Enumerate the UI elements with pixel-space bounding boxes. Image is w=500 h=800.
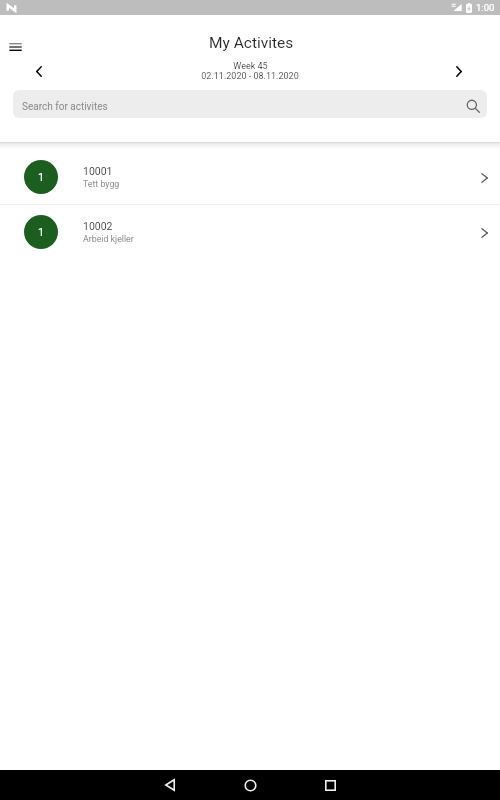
staticText: Tett bygg (83, 179, 120, 189)
staticText: My Activites (209, 34, 294, 52)
staticText: Arbeid kjeller (83, 234, 134, 244)
staticText: 1 (38, 226, 45, 239)
button[interactable]: Home (228, 770, 272, 800)
staticText: Search for activites (22, 101, 108, 113)
staticText: 10002 (83, 220, 113, 232)
button[interactable]: Recents (308, 770, 352, 800)
staticText: 1 (38, 171, 45, 184)
button[interactable]: Previous week (27, 60, 50, 83)
staticText: Week 45 (233, 61, 268, 72)
button[interactable]: Back (148, 770, 192, 800)
button[interactable]: Menu (3, 35, 27, 59)
button[interactable]: 1 (0, 205, 500, 259)
staticText: 1:00 (476, 2, 495, 13)
button[interactable]: 1 (0, 150, 500, 204)
button[interactable]: Next week (447, 60, 470, 83)
staticText: 02.11.2020 - 08.11.2020 (201, 71, 299, 82)
staticText: 10001 (83, 165, 113, 177)
button[interactable]: Search for activites (13, 90, 487, 118)
